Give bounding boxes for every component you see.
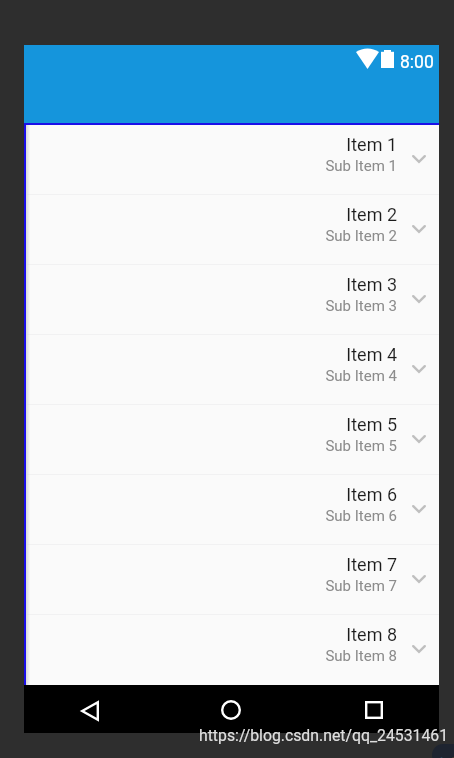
staticText: Sub Item 5 <box>325 437 397 455</box>
staticText: Item 8 <box>346 624 397 645</box>
staticText: Sub Item 4 <box>325 367 397 385</box>
button[interactable]: Item 3 <box>24 265 439 334</box>
button[interactable]: Item 7 <box>24 545 439 614</box>
staticText: Item 2 <box>346 204 397 225</box>
button[interactable]: Item 1 <box>24 125 439 194</box>
button[interactable]: Back <box>58 685 122 733</box>
staticText: Sub Item 7 <box>325 577 397 595</box>
staticText: Sub Item 3 <box>325 297 397 315</box>
button[interactable]: Recents <box>342 685 406 733</box>
staticText: Sub Item 2 <box>325 227 397 245</box>
button[interactable]: Item 6 <box>24 475 439 544</box>
button[interactable]: Chat <box>432 744 454 758</box>
staticText: Item 3 <box>346 274 397 295</box>
staticText: Item 6 <box>346 484 397 505</box>
button[interactable]: Home <box>199 685 263 733</box>
staticText: Sub Item 6 <box>325 507 397 525</box>
staticText: Sub Item 8 <box>325 647 397 665</box>
staticText: Item 7 <box>346 554 397 575</box>
staticText: https://blog.csdn.net/qq_24531461 <box>199 726 449 745</box>
staticText: Sub Item 1 <box>325 157 397 175</box>
button[interactable]: Item 5 <box>24 405 439 474</box>
staticText: Item 1 <box>346 134 397 155</box>
staticText: Item 5 <box>346 414 397 435</box>
staticText: Item 4 <box>346 344 397 365</box>
button[interactable]: Item 2 <box>24 195 439 264</box>
button[interactable]: Item 8 <box>24 615 439 684</box>
staticText: 8:00 <box>400 52 434 73</box>
button[interactable]: Item 4 <box>24 335 439 404</box>
